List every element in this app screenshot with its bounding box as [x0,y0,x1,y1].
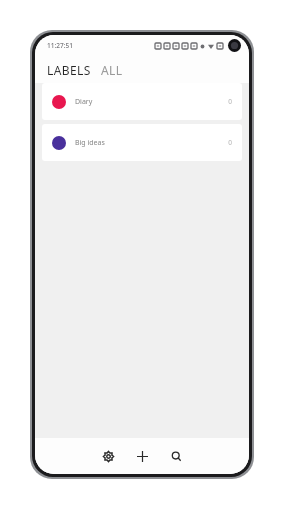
staticText: 0 [228,97,232,106]
button[interactable]: LABELS [47,62,91,78]
button[interactable]: Big ideas [42,124,242,161]
staticText: LABELS [47,62,91,78]
staticText: Diary [75,97,228,107]
staticText: 0 [228,138,232,147]
button[interactable]: Search [163,443,189,469]
staticText: 11:27:51 [47,41,73,50]
button[interactable]: Add label [129,443,155,469]
button[interactable]: Settings [95,443,121,469]
staticText: ALL [101,62,123,78]
staticText: Big ideas [75,138,228,148]
button[interactable]: Diary [42,83,242,120]
button[interactable]: ALL [101,62,123,78]
